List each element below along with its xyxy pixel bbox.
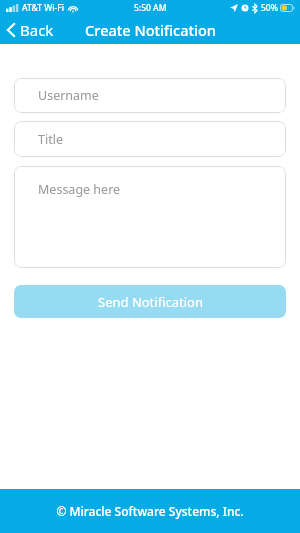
staticText: Message here: [38, 181, 121, 198]
staticText: Send Notification: [98, 293, 203, 311]
staticText: © Miracle Software Systems, Inc.: [56, 503, 244, 519]
staticText: 50%: [261, 2, 278, 14]
staticText: Create Notification: [85, 20, 216, 40]
staticText: Title: [38, 131, 63, 148]
staticText: Back: [20, 20, 54, 40]
button[interactable]: Back: [0, 18, 60, 42]
button[interactable]: Message here: [14, 166, 286, 268]
staticText: 5:50 AM: [134, 2, 167, 14]
button[interactable]: Username: [14, 78, 286, 113]
button[interactable]: Send Notification: [14, 285, 286, 318]
staticText: AT&T Wi-Fi: [22, 2, 65, 14]
button[interactable]: Title: [14, 121, 286, 157]
staticText: Username: [38, 87, 99, 104]
